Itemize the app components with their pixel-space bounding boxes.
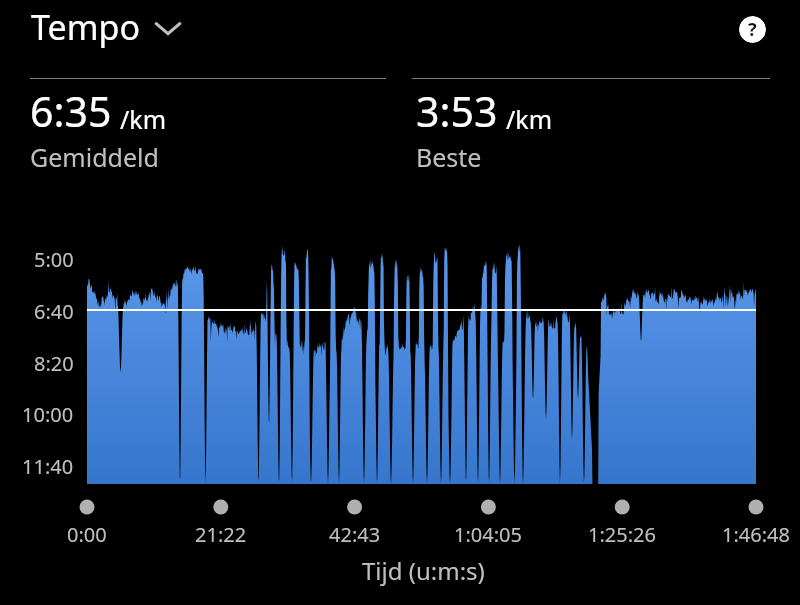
staticText: 3:53 <box>416 83 498 139</box>
staticText: 6:40 <box>34 298 74 325</box>
staticText: 1:04:05 <box>454 521 522 548</box>
button[interactable]: Tempo <box>31 4 182 50</box>
staticText: 8:20 <box>34 350 74 377</box>
staticText: 10:00 <box>22 401 74 428</box>
staticText: 1:25:26 <box>588 521 656 548</box>
staticText: ? <box>748 17 757 42</box>
staticText: /km <box>506 102 553 136</box>
staticText: Beste <box>416 140 482 174</box>
staticText: 1:46:48 <box>722 521 790 548</box>
button[interactable]: Help <box>739 16 766 43</box>
staticText: 5:00 <box>34 246 74 273</box>
staticText: 6:35 <box>30 83 112 139</box>
staticText: 0:00 <box>67 521 107 548</box>
staticText: Tijd (u:m:s) <box>362 554 485 587</box>
button[interactable]: 6:35 <box>30 80 386 175</box>
button[interactable]: 3:53 <box>412 80 770 175</box>
staticText: 42:43 <box>329 521 381 548</box>
staticText: 21:22 <box>195 521 247 548</box>
staticText: /km <box>120 102 167 136</box>
staticText: Tempo <box>31 4 140 50</box>
staticText: Gemiddeld <box>30 140 159 174</box>
staticText: 11:40 <box>22 453 74 480</box>
